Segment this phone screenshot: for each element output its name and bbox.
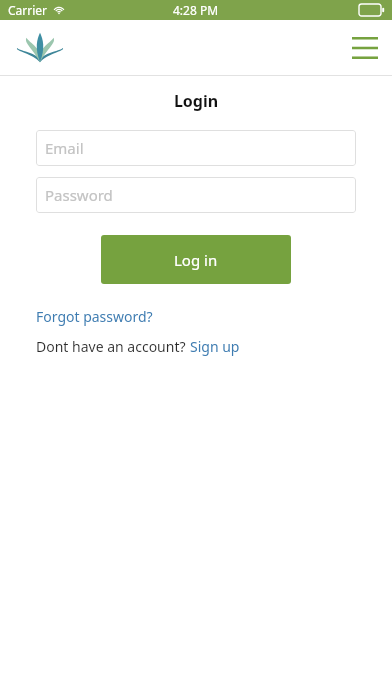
button[interactable]: Log in [101, 235, 291, 284]
staticText: Log in [174, 250, 218, 270]
button[interactable]: Sign up [190, 337, 240, 356]
staticText: Login [0, 90, 392, 112]
staticText: 4:28 PM [173, 2, 219, 18]
staticText: Forgot password? [36, 307, 153, 326]
staticText: Sign up [190, 337, 240, 356]
button[interactable]: Password [36, 177, 356, 213]
button[interactable]: Forgot password? [36, 305, 153, 328]
staticText: Email [45, 138, 84, 158]
button[interactable]: Menu [352, 37, 378, 59]
button[interactable]: Email [36, 130, 356, 166]
button[interactable]: Logo [14, 31, 66, 65]
staticText: Password [45, 185, 113, 205]
staticText: Dont have an account? [36, 337, 190, 356]
staticText: Carrier [8, 2, 48, 18]
